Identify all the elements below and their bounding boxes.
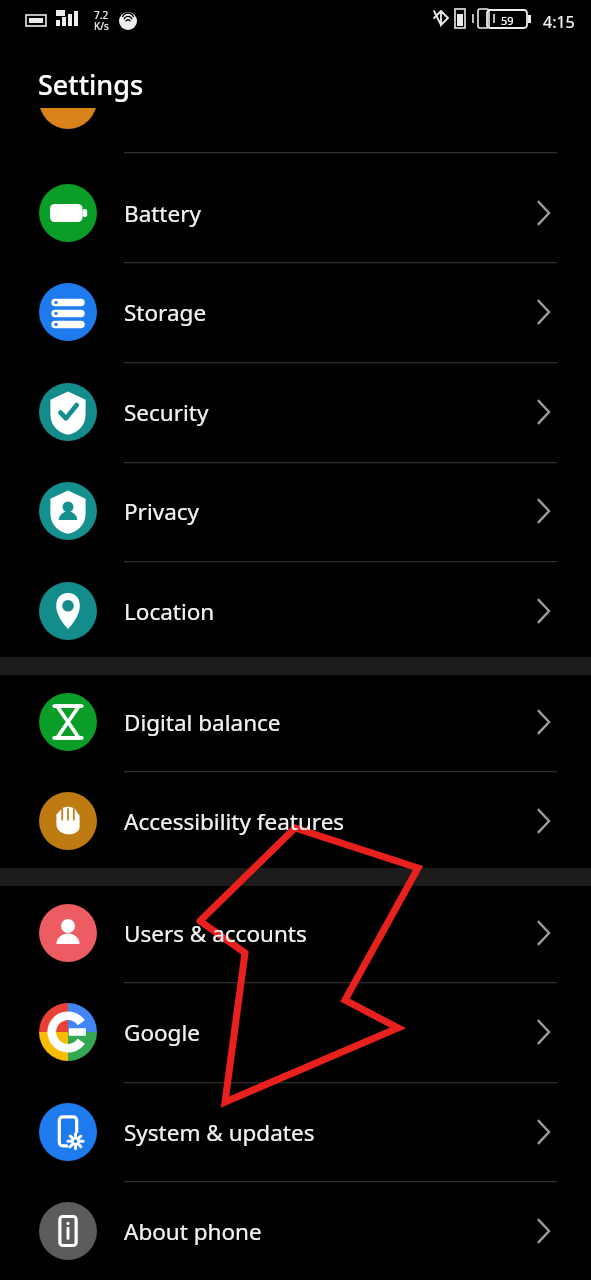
staticText: System & updates bbox=[124, 1117, 315, 1148]
button[interactable]: Location bbox=[0, 561, 591, 661]
button[interactable]: Google bbox=[0, 982, 591, 1082]
staticText: 7.2 bbox=[94, 8, 109, 21]
staticText: About phone bbox=[124, 1216, 262, 1247]
button[interactable]: Users & accounts bbox=[0, 883, 591, 983]
staticText: Battery bbox=[124, 198, 201, 229]
staticText: Privacy bbox=[124, 496, 200, 527]
staticText: Users & accounts bbox=[124, 918, 307, 949]
staticText: Settings bbox=[38, 66, 144, 103]
staticText: Storage bbox=[124, 297, 207, 328]
button[interactable]: Digital balance bbox=[0, 672, 591, 772]
button[interactable]: About phone bbox=[0, 1181, 591, 1280]
staticText: Digital balance bbox=[124, 707, 281, 738]
staticText: Security bbox=[124, 397, 209, 428]
staticText: Location bbox=[124, 596, 215, 627]
button[interactable]: System & updates bbox=[0, 1082, 591, 1182]
button[interactable]: Privacy bbox=[0, 461, 591, 561]
staticText: 4:15 bbox=[543, 11, 575, 33]
button[interactable]: Battery bbox=[0, 163, 591, 263]
staticText: Accessibility features bbox=[124, 806, 345, 837]
button[interactable]: Security bbox=[0, 362, 591, 462]
button[interactable]: Accessibility features bbox=[0, 771, 591, 871]
staticText: 59 bbox=[501, 13, 514, 28]
staticText: Google bbox=[124, 1017, 200, 1048]
button[interactable]: Storage bbox=[0, 262, 591, 362]
staticText: K/s bbox=[94, 19, 109, 32]
